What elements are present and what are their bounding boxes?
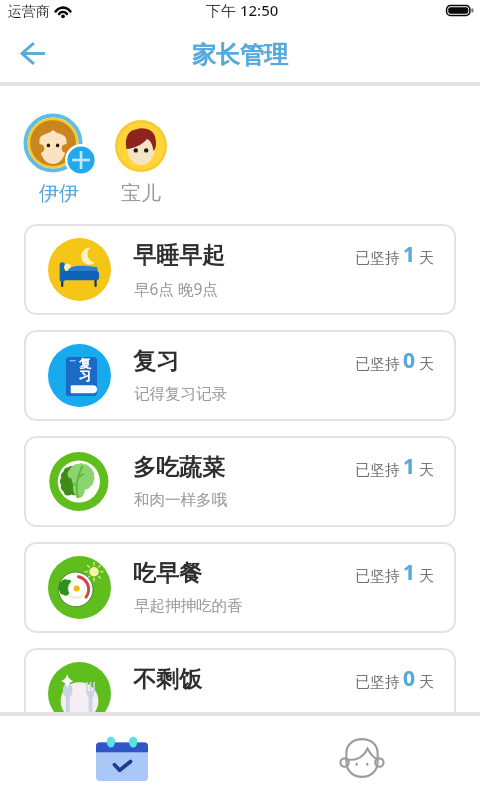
- button[interactable]: 早睡早起: [24, 224, 456, 315]
- staticText: 下午 12:50: [206, 0, 279, 20]
- button[interactable]: Back: [7, 31, 55, 79]
- staticText: 早起抻抻吃的香: [134, 596, 243, 616]
- button[interactable]: 吃早餐: [24, 542, 456, 633]
- staticText: 家长管理: [192, 40, 288, 70]
- staticText: 记得复习记录: [134, 384, 227, 404]
- staticText: 已坚持: [355, 249, 400, 268]
- staticText: 已坚持: [355, 567, 400, 586]
- staticText: 已坚持: [355, 355, 400, 374]
- staticText: 早睡早起: [133, 241, 225, 270]
- button[interactable]: 多吃蔬菜: [24, 436, 456, 527]
- staticText: 复习: [133, 347, 179, 376]
- staticText: 0: [403, 346, 416, 375]
- staticText: 宝儿: [121, 181, 161, 206]
- button[interactable]: Profile: [240, 716, 480, 800]
- staticText: 伊伊: [39, 181, 79, 206]
- button[interactable]: 宝儿: [110, 113, 172, 206]
- staticText: 天: [419, 673, 434, 692]
- staticText: 不剩饭: [133, 665, 202, 694]
- staticText: 天: [419, 249, 434, 268]
- staticText: 1: [403, 452, 416, 481]
- staticText: 天: [419, 355, 434, 374]
- staticText: 天: [419, 567, 434, 586]
- staticText: 运营商: [8, 3, 50, 21]
- staticText: 吃早餐: [133, 559, 202, 588]
- button[interactable]: 复 习: [24, 330, 456, 421]
- staticText: 和肉一样多哦: [134, 490, 227, 510]
- staticText: 天: [419, 461, 434, 480]
- staticText: 多吃蔬菜: [133, 453, 225, 482]
- staticText: 已坚持: [355, 673, 400, 692]
- staticText: 1: [403, 240, 416, 269]
- staticText: 0: [403, 664, 416, 693]
- staticText: 早6点 晚9点: [134, 278, 218, 299]
- button[interactable]: 不剩饭: [24, 648, 456, 739]
- button[interactable]: 伊伊: [23, 110, 97, 206]
- button[interactable]: Habits: [0, 716, 240, 800]
- staticText: 复 习: [79, 356, 91, 384]
- staticText: 已坚持: [355, 461, 400, 480]
- staticText: 1: [403, 558, 416, 587]
